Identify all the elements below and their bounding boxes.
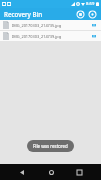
- button[interactable]: Home: [44, 165, 58, 179]
- button[interactable]: Select all: [75, 9, 86, 20]
- button[interactable]: Restore file: [90, 32, 98, 40]
- staticText: Recovery Bin: [4, 10, 43, 18]
- button[interactable]: Recents: [72, 165, 86, 179]
- button[interactable]: IMG_20170303_214739.jpg: [0, 31, 101, 41]
- staticText: IMG_20170303_214739.jpg: [12, 34, 88, 39]
- button[interactable]: Back: [15, 165, 29, 179]
- button[interactable]: IMG_20170303_214735.jpg: [0, 20, 101, 30]
- staticText: File was restored: [33, 143, 68, 149]
- button[interactable]: Restore file: [90, 21, 98, 29]
- staticText: IMG_20170303_214735.jpg: [12, 23, 88, 28]
- button[interactable]: More options: [87, 9, 98, 20]
- staticText: 8:59: [86, 1, 95, 7]
